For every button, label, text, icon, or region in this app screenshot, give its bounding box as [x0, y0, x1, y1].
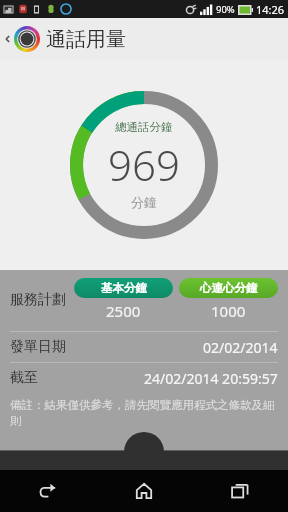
- other: Back: [3, 34, 13, 44]
- button[interactable]: 心連心分鐘: [179, 278, 278, 298]
- button[interactable]: Home: [96, 470, 192, 512]
- button[interactable]: Recent apps: [192, 470, 288, 512]
- button[interactable]: 截至: [0, 363, 288, 393]
- staticText: 分鐘: [131, 194, 157, 210]
- staticText: 1000: [211, 301, 246, 321]
- staticText: 備註：結果僅供參考，請先閱覽應用程式之條款及細則: [10, 398, 278, 428]
- staticText: 截至: [10, 369, 38, 387]
- staticText: 2500: [106, 301, 141, 321]
- button[interactable]: Back: [0, 18, 288, 60]
- staticText: 969: [108, 136, 180, 193]
- staticText: 基本分鐘: [101, 281, 147, 295]
- button[interactable]: 基本分鐘: [74, 278, 173, 298]
- staticText: 服務計劃: [10, 291, 66, 309]
- staticText: 02/02/2014: [203, 338, 278, 357]
- staticText: 90%: [216, 3, 235, 16]
- staticText: 14:26: [256, 2, 285, 17]
- staticText: 總通話分鐘: [115, 120, 173, 134]
- button[interactable]: Back: [0, 470, 96, 512]
- staticText: 通話用量: [46, 27, 126, 52]
- staticText: 24/02/2014 20:59:57: [144, 369, 278, 388]
- staticText: 發單日期: [10, 338, 66, 356]
- button[interactable]: 發單日期: [0, 332, 288, 362]
- staticText: 心連心分鐘: [200, 281, 258, 295]
